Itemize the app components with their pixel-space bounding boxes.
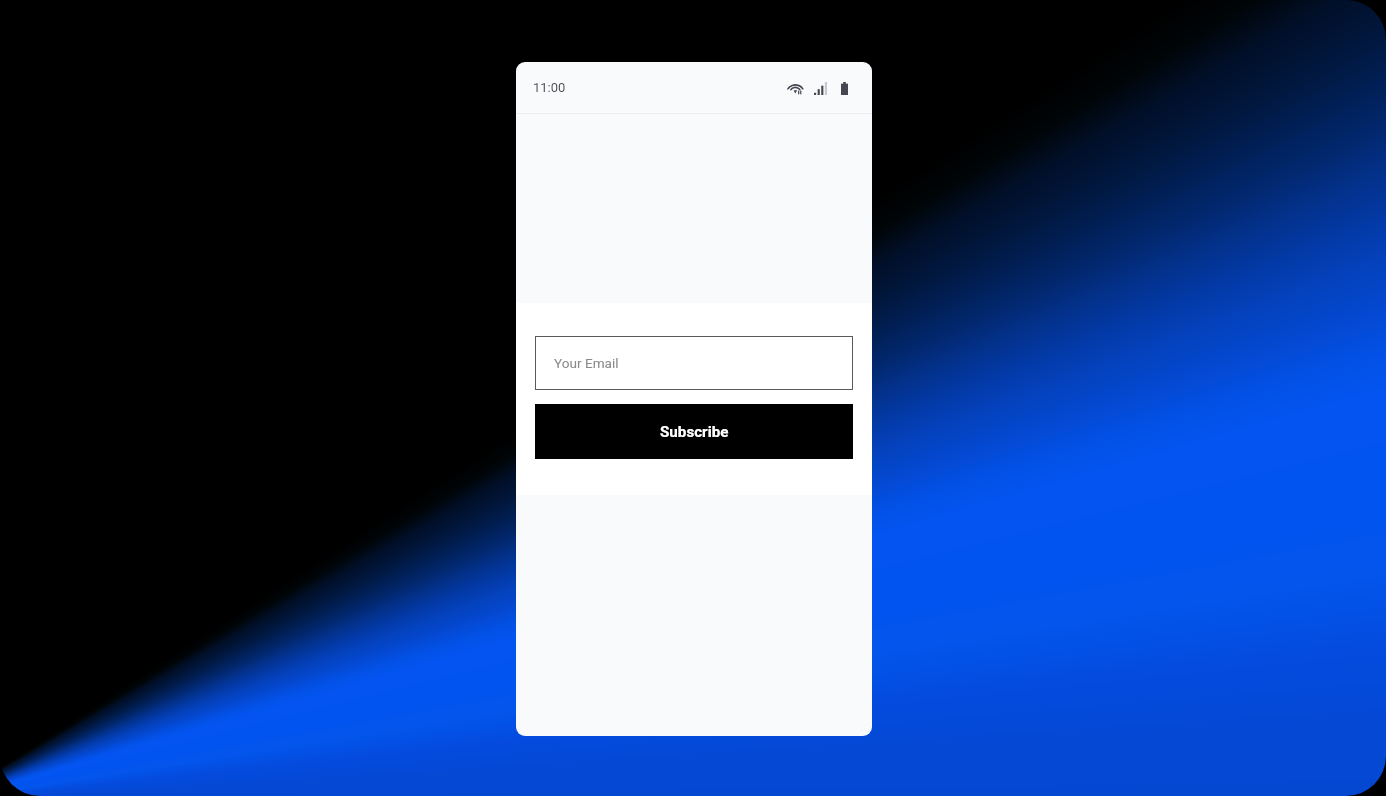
staticText: Subscribe xyxy=(660,423,729,441)
staticText: Your Email xyxy=(554,355,619,371)
other: Mobile signal strength xyxy=(814,82,827,95)
button[interactable]: Subscribe xyxy=(535,404,853,459)
other: Wi-Fi signal xyxy=(788,81,804,95)
other: Battery full xyxy=(841,82,848,95)
button[interactable]: Your Email xyxy=(535,336,853,390)
staticText: 11:00 xyxy=(533,80,566,95)
